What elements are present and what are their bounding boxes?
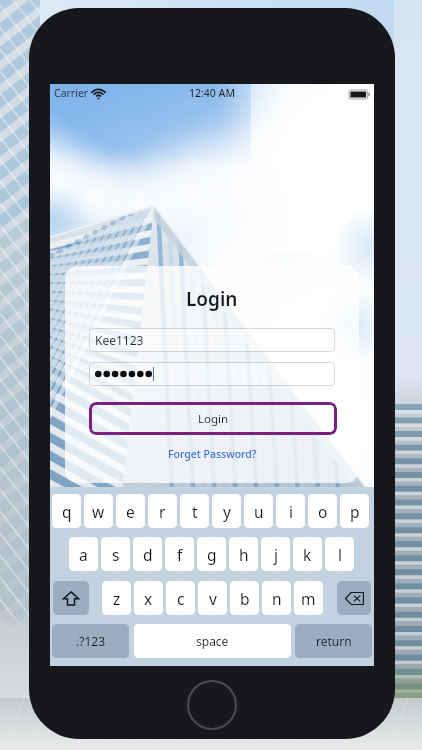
button[interactable]: Forget Password? xyxy=(168,447,257,461)
staticText: k xyxy=(303,544,312,565)
staticText: t xyxy=(192,501,198,522)
button[interactable]: m xyxy=(294,581,323,615)
button[interactable]: b xyxy=(230,581,259,615)
button[interactable]: l xyxy=(325,537,354,571)
staticText: v xyxy=(209,588,217,609)
staticText: space xyxy=(196,633,229,649)
staticText: h xyxy=(239,544,249,565)
staticText: w xyxy=(92,501,105,522)
staticText: e xyxy=(126,501,135,522)
staticText: Login xyxy=(186,286,238,312)
button[interactable]: .?123 xyxy=(52,624,129,658)
staticText: c xyxy=(177,588,185,609)
button[interactable]: o xyxy=(308,494,337,528)
button[interactable]: u xyxy=(244,494,273,528)
staticText: d xyxy=(143,544,153,565)
button[interactable]: v xyxy=(198,581,227,615)
button[interactable]: Shift xyxy=(53,581,89,615)
button[interactable]: e xyxy=(116,494,145,528)
button[interactable]: n xyxy=(262,581,291,615)
button[interactable]: Backspace xyxy=(337,581,371,615)
button[interactable]: return xyxy=(295,624,372,658)
button[interactable]: Login xyxy=(89,402,337,435)
staticText: a xyxy=(79,544,88,565)
staticText: l xyxy=(338,544,342,565)
staticText: u xyxy=(254,501,264,522)
staticText: y xyxy=(223,501,231,522)
button[interactable]: q xyxy=(52,494,81,528)
staticText: m xyxy=(301,588,316,609)
button[interactable]: x xyxy=(134,581,163,615)
staticText: return xyxy=(316,633,352,649)
button[interactable]: s xyxy=(101,537,130,571)
staticText: .?123 xyxy=(76,633,106,649)
button[interactable]: d xyxy=(133,537,162,571)
button[interactable]: space xyxy=(134,624,291,658)
button[interactable] xyxy=(89,362,335,386)
staticText: j xyxy=(274,544,278,565)
staticText: b xyxy=(240,588,250,609)
button[interactable]: z xyxy=(102,581,131,615)
button[interactable]: g xyxy=(197,537,226,571)
staticText: r xyxy=(159,501,166,522)
staticText: q xyxy=(62,501,72,522)
button[interactable]: j xyxy=(261,537,290,571)
staticText: Carrier xyxy=(54,86,89,100)
staticText: Kee1123 xyxy=(95,332,144,348)
staticText: 12:40 AM xyxy=(189,86,236,100)
button[interactable]: r xyxy=(148,494,177,528)
button[interactable]: Kee1123 xyxy=(89,328,335,352)
staticText: x xyxy=(144,588,153,609)
staticText: z xyxy=(113,588,121,609)
staticText: p xyxy=(350,501,360,522)
staticText: Login xyxy=(198,411,229,427)
button[interactable]: h xyxy=(229,537,258,571)
staticText: n xyxy=(272,588,282,609)
button[interactable]: p xyxy=(340,494,369,528)
staticText: s xyxy=(112,544,120,565)
staticText: g xyxy=(207,544,217,565)
staticText: i xyxy=(289,501,293,522)
button[interactable]: c xyxy=(166,581,195,615)
button[interactable]: w xyxy=(84,494,113,528)
button[interactable]: t xyxy=(180,494,209,528)
staticText: f xyxy=(177,544,183,565)
button[interactable]: i xyxy=(276,494,305,528)
button[interactable]: k xyxy=(293,537,322,571)
staticText: o xyxy=(318,501,328,522)
button[interactable]: a xyxy=(69,537,98,571)
button[interactable]: f xyxy=(165,537,194,571)
button[interactable]: y xyxy=(212,494,241,528)
button[interactable]: Home xyxy=(187,680,237,730)
